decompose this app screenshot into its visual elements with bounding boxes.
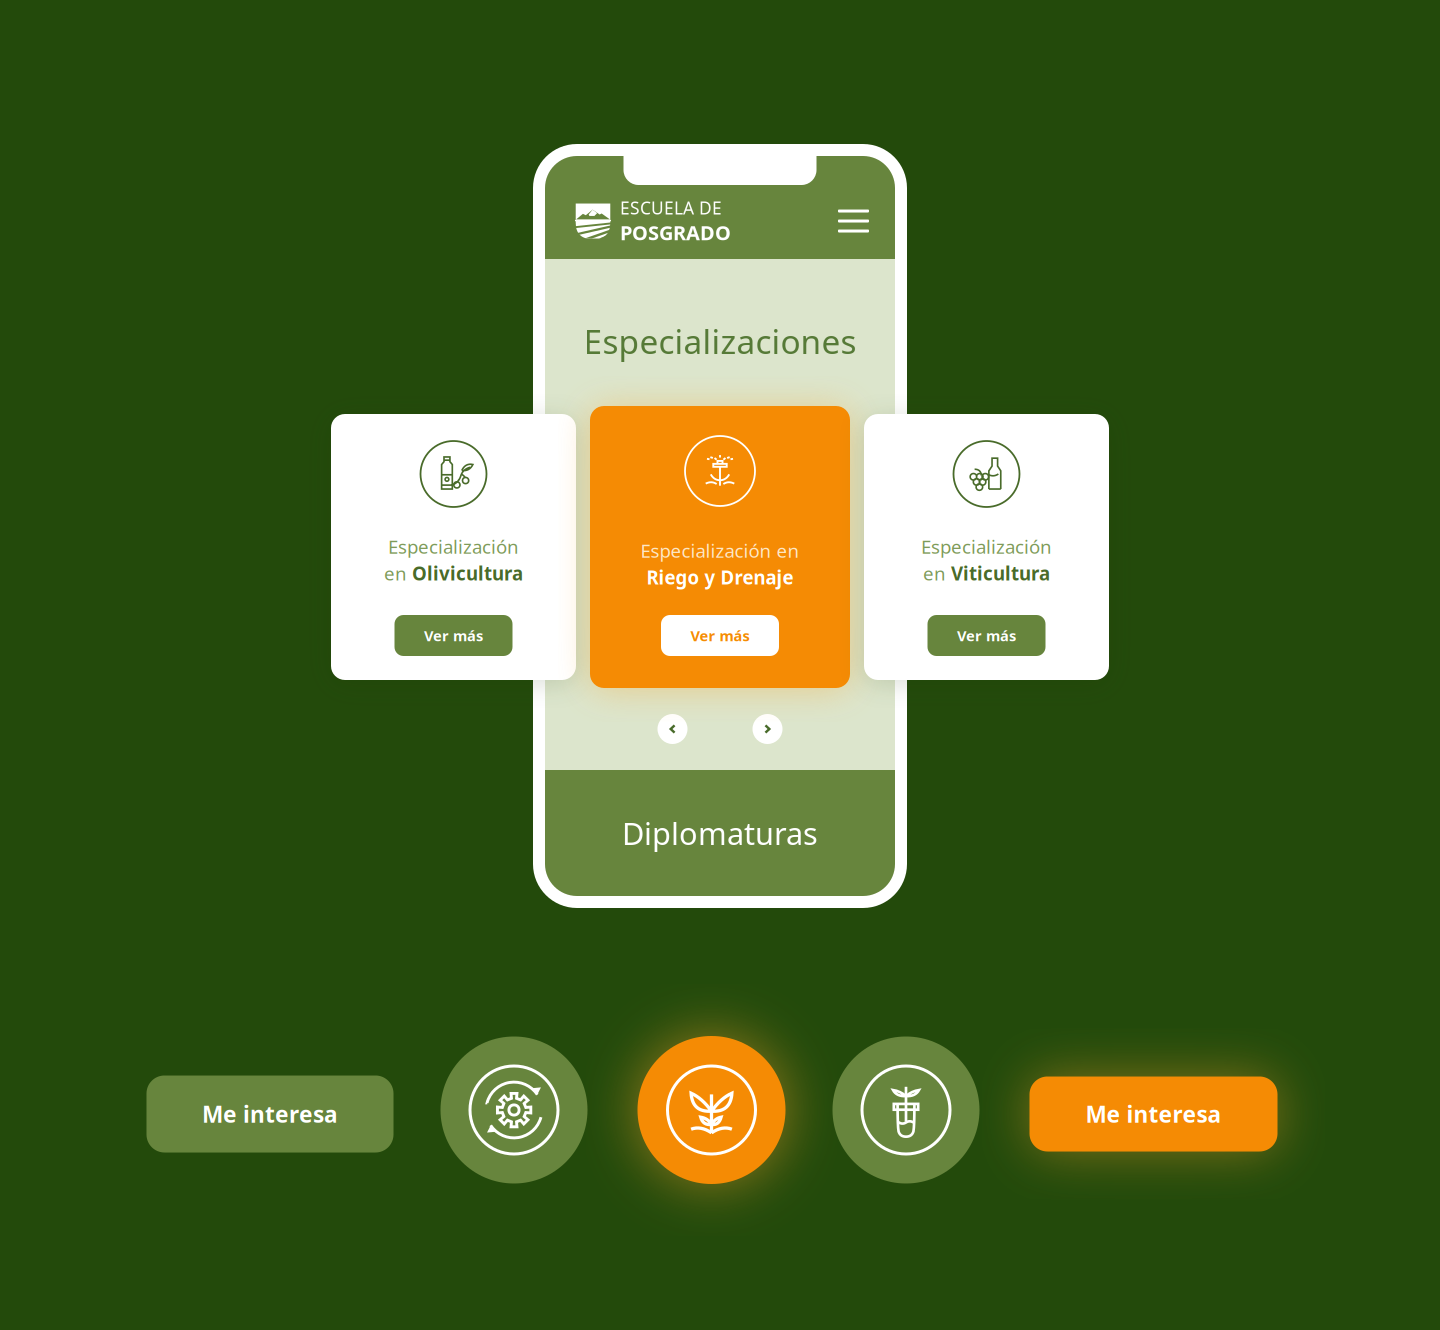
staticText: Me interesa bbox=[202, 1099, 338, 1129]
staticText: Diplomaturas bbox=[622, 813, 818, 853]
button[interactable]: Anterior bbox=[657, 714, 687, 744]
staticText: en bbox=[923, 561, 951, 586]
staticText: ESCUELA DE bbox=[620, 196, 722, 219]
staticText: Ver más bbox=[424, 626, 483, 645]
staticText: Riego y Drenaje bbox=[646, 565, 793, 590]
button[interactable]: Ver más bbox=[394, 615, 512, 656]
staticText: Ver más bbox=[957, 626, 1016, 645]
staticText: Olivicultura bbox=[412, 561, 523, 586]
button[interactable]: Me interesa bbox=[1029, 1076, 1277, 1151]
button[interactable]: Cultivos bbox=[637, 1036, 785, 1184]
button[interactable]: Abrir menú bbox=[838, 209, 869, 232]
button[interactable]: Siguiente bbox=[752, 714, 782, 744]
button[interactable]: Ver más bbox=[927, 615, 1045, 656]
staticText: Especialización en bbox=[640, 538, 799, 563]
staticText: POSGRADO bbox=[620, 219, 731, 246]
staticText: Ver más bbox=[690, 626, 749, 645]
staticText: Especialización bbox=[921, 534, 1052, 559]
button[interactable]: Me interesa bbox=[146, 1075, 393, 1152]
button[interactable]: Ver más bbox=[661, 615, 779, 656]
staticText: Me interesa bbox=[1085, 1099, 1221, 1129]
staticText: Especializaciones bbox=[583, 319, 856, 363]
staticText: Especialización bbox=[388, 534, 519, 559]
button[interactable]: Laboratorio bbox=[832, 1036, 979, 1183]
staticText: en bbox=[384, 561, 412, 586]
staticText: Viticultura bbox=[951, 561, 1050, 586]
button[interactable]: Gestión agrícola bbox=[440, 1036, 587, 1183]
